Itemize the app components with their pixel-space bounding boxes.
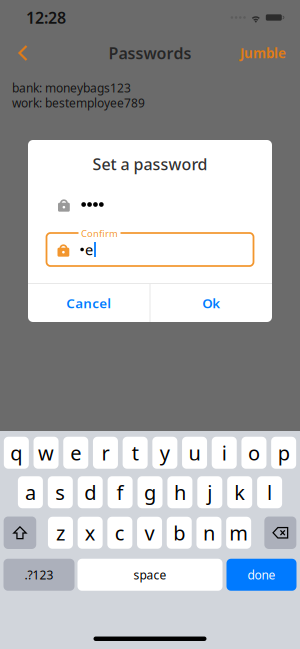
staticText: k xyxy=(234,479,245,506)
staticText: u xyxy=(188,439,200,466)
staticText: o xyxy=(248,439,260,466)
button[interactable]: u xyxy=(182,437,207,469)
button[interactable]: l xyxy=(257,476,282,508)
button[interactable]: done xyxy=(226,559,296,591)
staticText: l xyxy=(267,479,272,506)
button[interactable]: Cancel xyxy=(28,284,149,322)
button[interactable]: .?123 xyxy=(3,559,74,591)
staticText: work: bestemployee789 xyxy=(12,95,145,111)
button[interactable]: r xyxy=(93,437,118,469)
staticText: Set a password xyxy=(92,153,207,175)
button[interactable]: e xyxy=(63,437,88,469)
staticText: Confirm xyxy=(81,227,118,240)
staticText: space xyxy=(133,567,166,583)
button[interactable]: c xyxy=(107,517,132,549)
button[interactable]: o xyxy=(241,437,266,469)
staticText: n xyxy=(203,519,215,546)
staticText: Cancel xyxy=(66,294,111,312)
staticText: d xyxy=(84,479,96,506)
staticText: .?123 xyxy=(24,567,53,583)
staticText: p xyxy=(278,439,290,466)
button[interactable]: q xyxy=(4,437,29,469)
button[interactable]: Shift xyxy=(4,516,36,549)
button[interactable]: g xyxy=(137,476,162,508)
staticText: f xyxy=(117,479,124,506)
button[interactable]: z xyxy=(48,517,73,549)
button[interactable]: v xyxy=(137,517,162,549)
staticText: z xyxy=(56,519,65,546)
button[interactable]: m xyxy=(226,517,251,549)
staticText: c xyxy=(115,519,125,546)
staticText: e xyxy=(85,240,93,259)
button[interactable]: Delete xyxy=(264,516,296,549)
button[interactable]: x xyxy=(78,517,103,549)
staticText: s xyxy=(55,479,65,506)
staticText: Passwords xyxy=(108,42,191,64)
staticText: b xyxy=(173,519,185,546)
staticText: 12:28 xyxy=(26,7,66,28)
button[interactable]: j xyxy=(197,476,222,508)
staticText: x xyxy=(85,519,96,546)
button[interactable]: Ok xyxy=(150,284,272,322)
staticText: h xyxy=(174,479,186,506)
button[interactable]: h xyxy=(167,476,192,508)
staticText: done xyxy=(247,567,275,583)
button[interactable]: i xyxy=(212,437,237,469)
staticText: bank: moneybags123 xyxy=(12,80,131,96)
button[interactable]: w xyxy=(33,437,58,469)
button[interactable]: n xyxy=(196,517,221,549)
staticText: r xyxy=(101,439,109,466)
button[interactable]: a xyxy=(18,476,43,508)
button[interactable]: Jumble xyxy=(234,35,292,71)
staticText: g xyxy=(144,479,156,506)
button[interactable]: Back xyxy=(4,35,42,71)
staticText: Ok xyxy=(202,294,220,312)
button[interactable]: t xyxy=(123,437,148,469)
staticText: Jumble xyxy=(240,44,286,62)
button[interactable]: y xyxy=(152,437,177,469)
staticText: i xyxy=(222,439,227,466)
button[interactable]: f xyxy=(108,476,133,508)
staticText: v xyxy=(145,519,155,546)
button[interactable]: s xyxy=(48,476,73,508)
staticText: t xyxy=(132,439,139,466)
staticText: y xyxy=(160,439,170,466)
staticText: a xyxy=(25,479,36,506)
staticText: m xyxy=(229,519,248,546)
button[interactable]: k xyxy=(227,476,252,508)
button[interactable]: space xyxy=(77,559,222,591)
staticText: q xyxy=(10,439,22,466)
button[interactable]: p xyxy=(271,437,296,469)
staticText: j xyxy=(207,479,212,506)
staticText: e xyxy=(70,439,81,466)
button[interactable]: b xyxy=(167,517,192,549)
staticText: w xyxy=(38,439,54,466)
button[interactable]: d xyxy=(78,476,103,508)
